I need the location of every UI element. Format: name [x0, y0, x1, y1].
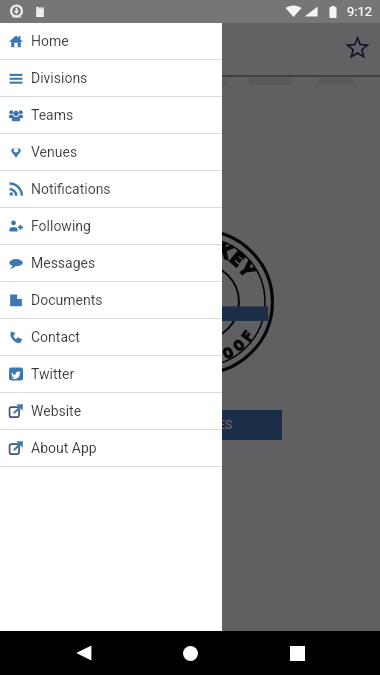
- button[interactable]: Teams: [0, 97, 222, 133]
- button[interactable]: Home: [0, 23, 222, 59]
- button[interactable]: Recent apps: [275, 631, 319, 675]
- staticText: Documents: [31, 292, 103, 308]
- button[interactable]: Venues: [0, 134, 222, 170]
- button[interactable]: Divisions: [0, 60, 222, 96]
- staticText: Home: [31, 33, 69, 49]
- button[interactable]: Twitter: [0, 356, 222, 392]
- staticText: Twitter: [31, 366, 75, 382]
- button[interactable]: Following: [0, 208, 222, 244]
- button[interactable]: VIEW FIXTURES: [98, 410, 282, 440]
- button[interactable]: Documents: [0, 282, 222, 318]
- button[interactable]: Contact: [0, 319, 222, 355]
- staticText: Divisions: [31, 70, 88, 86]
- staticText: 9:12: [347, 4, 373, 19]
- staticText: Contact: [31, 329, 80, 345]
- button[interactable]: Website: [0, 393, 222, 429]
- button[interactable]: Messages: [0, 245, 222, 281]
- staticText: VIEW FIXTURES: [147, 418, 233, 432]
- button[interactable]: Home: [168, 631, 212, 675]
- button[interactable]: Back: [62, 631, 106, 675]
- staticText: Following: [31, 218, 91, 234]
- button[interactable]: About App: [0, 430, 222, 466]
- staticText: About App: [31, 440, 97, 456]
- staticText: Notifications: [31, 181, 111, 197]
- staticText: Venues: [31, 144, 78, 160]
- staticText: Messages: [31, 255, 96, 271]
- staticText: Teams: [31, 107, 74, 123]
- staticText: Website: [31, 403, 82, 419]
- button[interactable]: Notifications: [0, 171, 222, 207]
- button[interactable]: Favorite: [344, 34, 371, 61]
